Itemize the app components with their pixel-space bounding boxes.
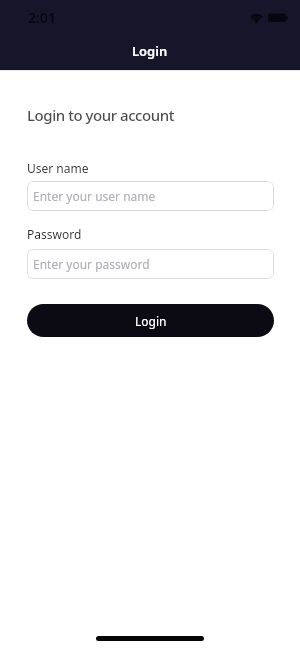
staticText: Enter your password <box>33 256 150 272</box>
staticText: Login <box>132 42 168 60</box>
staticText: 2:01 <box>28 8 56 27</box>
button[interactable]: Login <box>27 304 274 337</box>
staticText: Password <box>27 226 82 242</box>
staticText: Login <box>135 313 167 329</box>
button[interactable]: Enter your user name <box>27 181 274 211</box>
staticText: User name <box>27 160 89 176</box>
staticText: Login to your account <box>27 105 174 125</box>
button[interactable]: Enter your password <box>27 249 274 279</box>
staticText: Enter your user name <box>33 188 156 204</box>
